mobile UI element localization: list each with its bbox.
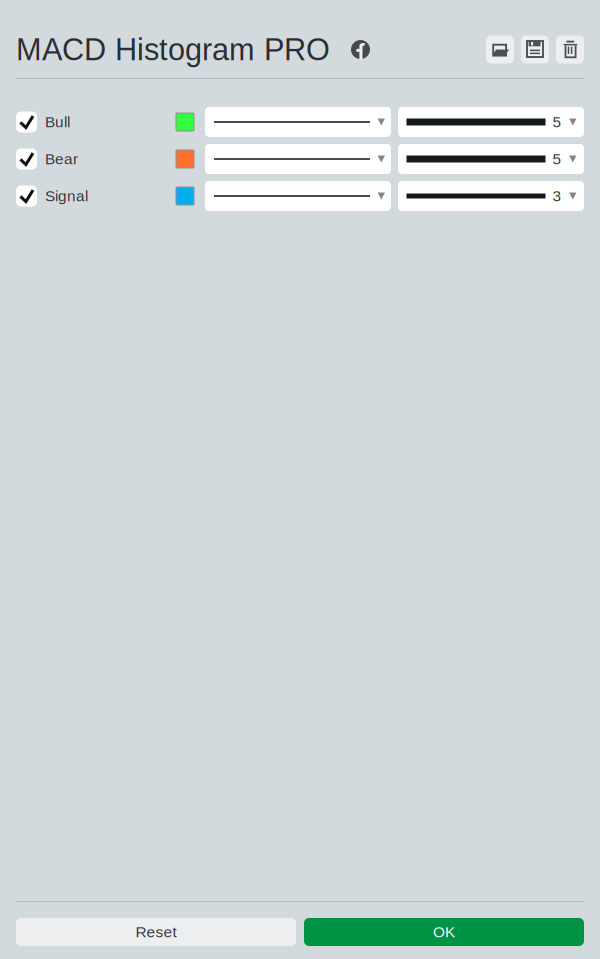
button[interactable]: Bear	[16, 144, 176, 174]
button[interactable]: Line style	[205, 181, 391, 211]
button[interactable]: Colour	[176, 181, 205, 211]
staticText: MACD Histogram PRO	[16, 32, 330, 67]
staticText: Signal	[45, 187, 88, 204]
staticText: 5	[553, 150, 562, 167]
staticText: 5	[553, 113, 562, 130]
button[interactable]: Line thickness	[398, 107, 584, 137]
button[interactable]: Delete template	[556, 35, 584, 63]
staticText: Bear	[45, 150, 78, 167]
staticText: Bull	[45, 113, 70, 130]
button[interactable]: Line thickness	[398, 181, 584, 211]
button[interactable]: Line style	[205, 107, 391, 137]
staticText: 3	[553, 187, 562, 204]
button[interactable]: Signal	[16, 181, 176, 211]
button[interactable]: Bull	[16, 107, 176, 137]
button[interactable]: Line thickness	[398, 144, 584, 174]
button[interactable]: Line style	[205, 144, 391, 174]
button[interactable]: Reset	[16, 918, 296, 946]
button[interactable]: About this indicator	[351, 40, 370, 59]
button[interactable]: Save template	[521, 35, 549, 63]
button[interactable]: Load template	[486, 35, 514, 63]
button[interactable]: Colour	[176, 107, 205, 137]
staticText: OK	[433, 923, 455, 940]
staticText: Reset	[135, 923, 176, 940]
button[interactable]: OK	[304, 918, 584, 946]
button[interactable]: Colour	[176, 144, 205, 174]
